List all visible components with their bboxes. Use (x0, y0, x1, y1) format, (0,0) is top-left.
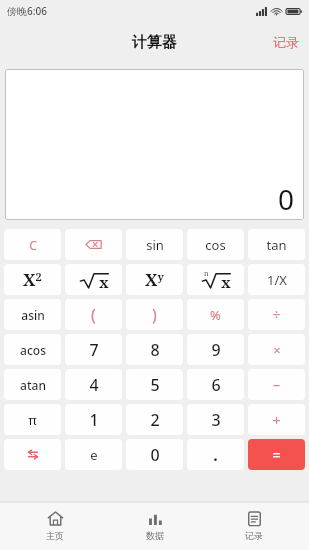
staticText: sin (146, 236, 164, 254)
staticText: x (221, 272, 231, 292)
staticText: 计算器 (132, 33, 177, 52)
staticText: e (90, 446, 98, 464)
button[interactable]: × (248, 334, 305, 365)
staticText: X2 (23, 268, 42, 291)
button[interactable]: ) (126, 299, 183, 330)
button[interactable]: 记录 (263, 30, 309, 54)
button[interactable]: Swap (4, 439, 61, 470)
button[interactable]: ( (65, 299, 122, 330)
staticText: 1 (89, 409, 99, 431)
staticText: – (273, 375, 280, 394)
button[interactable]: sin (126, 229, 183, 260)
button[interactable]: – (248, 369, 305, 400)
staticText: 主页 (46, 530, 64, 541)
button[interactable]: 5 (126, 369, 183, 400)
button[interactable]: 8 (126, 334, 183, 365)
button[interactable]: atan (4, 369, 61, 400)
staticText: tan (266, 236, 287, 254)
staticText: 傍晚6:06 (7, 4, 47, 18)
button[interactable]: 2 (126, 404, 183, 435)
button[interactable]: 7 (65, 334, 122, 365)
staticText: . (213, 444, 218, 466)
button[interactable]: Xy (126, 264, 183, 295)
button[interactable]: x (187, 264, 244, 295)
staticText: Xy (145, 268, 164, 291)
button[interactable]: 记录 (209, 502, 299, 550)
staticText: C (29, 237, 37, 253)
staticText: × (273, 341, 281, 359)
staticText: cos (205, 236, 226, 254)
button[interactable]: tan (248, 229, 305, 260)
button[interactable]: . (187, 439, 244, 470)
staticText: 2 (150, 409, 160, 431)
staticText: π (28, 411, 37, 429)
button[interactable]: = (248, 439, 305, 470)
button[interactable]: + (248, 404, 305, 435)
button[interactable]: x (65, 264, 122, 295)
button[interactable]: 9 (187, 334, 244, 365)
button[interactable]: 0 (5, 69, 304, 220)
button[interactable]: acos (4, 334, 61, 365)
button[interactable]: C (4, 229, 61, 260)
staticText: atan (20, 377, 46, 393)
button[interactable]: 4 (65, 369, 122, 400)
staticText: 0 (278, 180, 295, 218)
staticText: 记录 (273, 34, 299, 50)
staticText: 6 (211, 374, 221, 396)
button[interactable]: 数据 (110, 502, 200, 550)
button[interactable]: π (4, 404, 61, 435)
button[interactable]: e (65, 439, 122, 470)
staticText: ) (152, 304, 157, 326)
staticText: 9 (211, 339, 221, 361)
button[interactable]: Backspace (65, 229, 122, 260)
button[interactable]: 1/X (248, 264, 305, 295)
button[interactable]: asin (4, 299, 61, 330)
staticText: acos (20, 342, 46, 358)
staticText: ( (91, 304, 96, 326)
button[interactable]: X2 (4, 264, 61, 295)
staticText: + (272, 410, 281, 430)
staticText: 0 (150, 444, 160, 466)
button[interactable]: cos (187, 229, 244, 260)
staticText: 3 (211, 409, 221, 431)
button[interactable]: 6 (187, 369, 244, 400)
staticText: asin (21, 307, 45, 323)
button[interactable]: % (187, 299, 244, 330)
staticText: ÷ (272, 305, 281, 324)
staticText: 5 (150, 374, 160, 396)
button[interactable]: 0 (126, 439, 183, 470)
button[interactable]: ÷ (248, 299, 305, 330)
button[interactable]: 3 (187, 404, 244, 435)
staticText: % (210, 306, 221, 324)
button[interactable]: 1 (65, 404, 122, 435)
staticText: 记录 (245, 530, 263, 541)
staticText: x (99, 272, 109, 292)
staticText: 1/X (267, 271, 287, 289)
staticText: 7 (89, 339, 99, 361)
staticText: n (204, 269, 209, 279)
button[interactable]: 主页 (10, 502, 100, 550)
staticText: 数据 (146, 530, 164, 541)
staticText: 4 (89, 374, 99, 396)
staticText: = (272, 445, 281, 464)
staticText: 8 (150, 339, 160, 361)
